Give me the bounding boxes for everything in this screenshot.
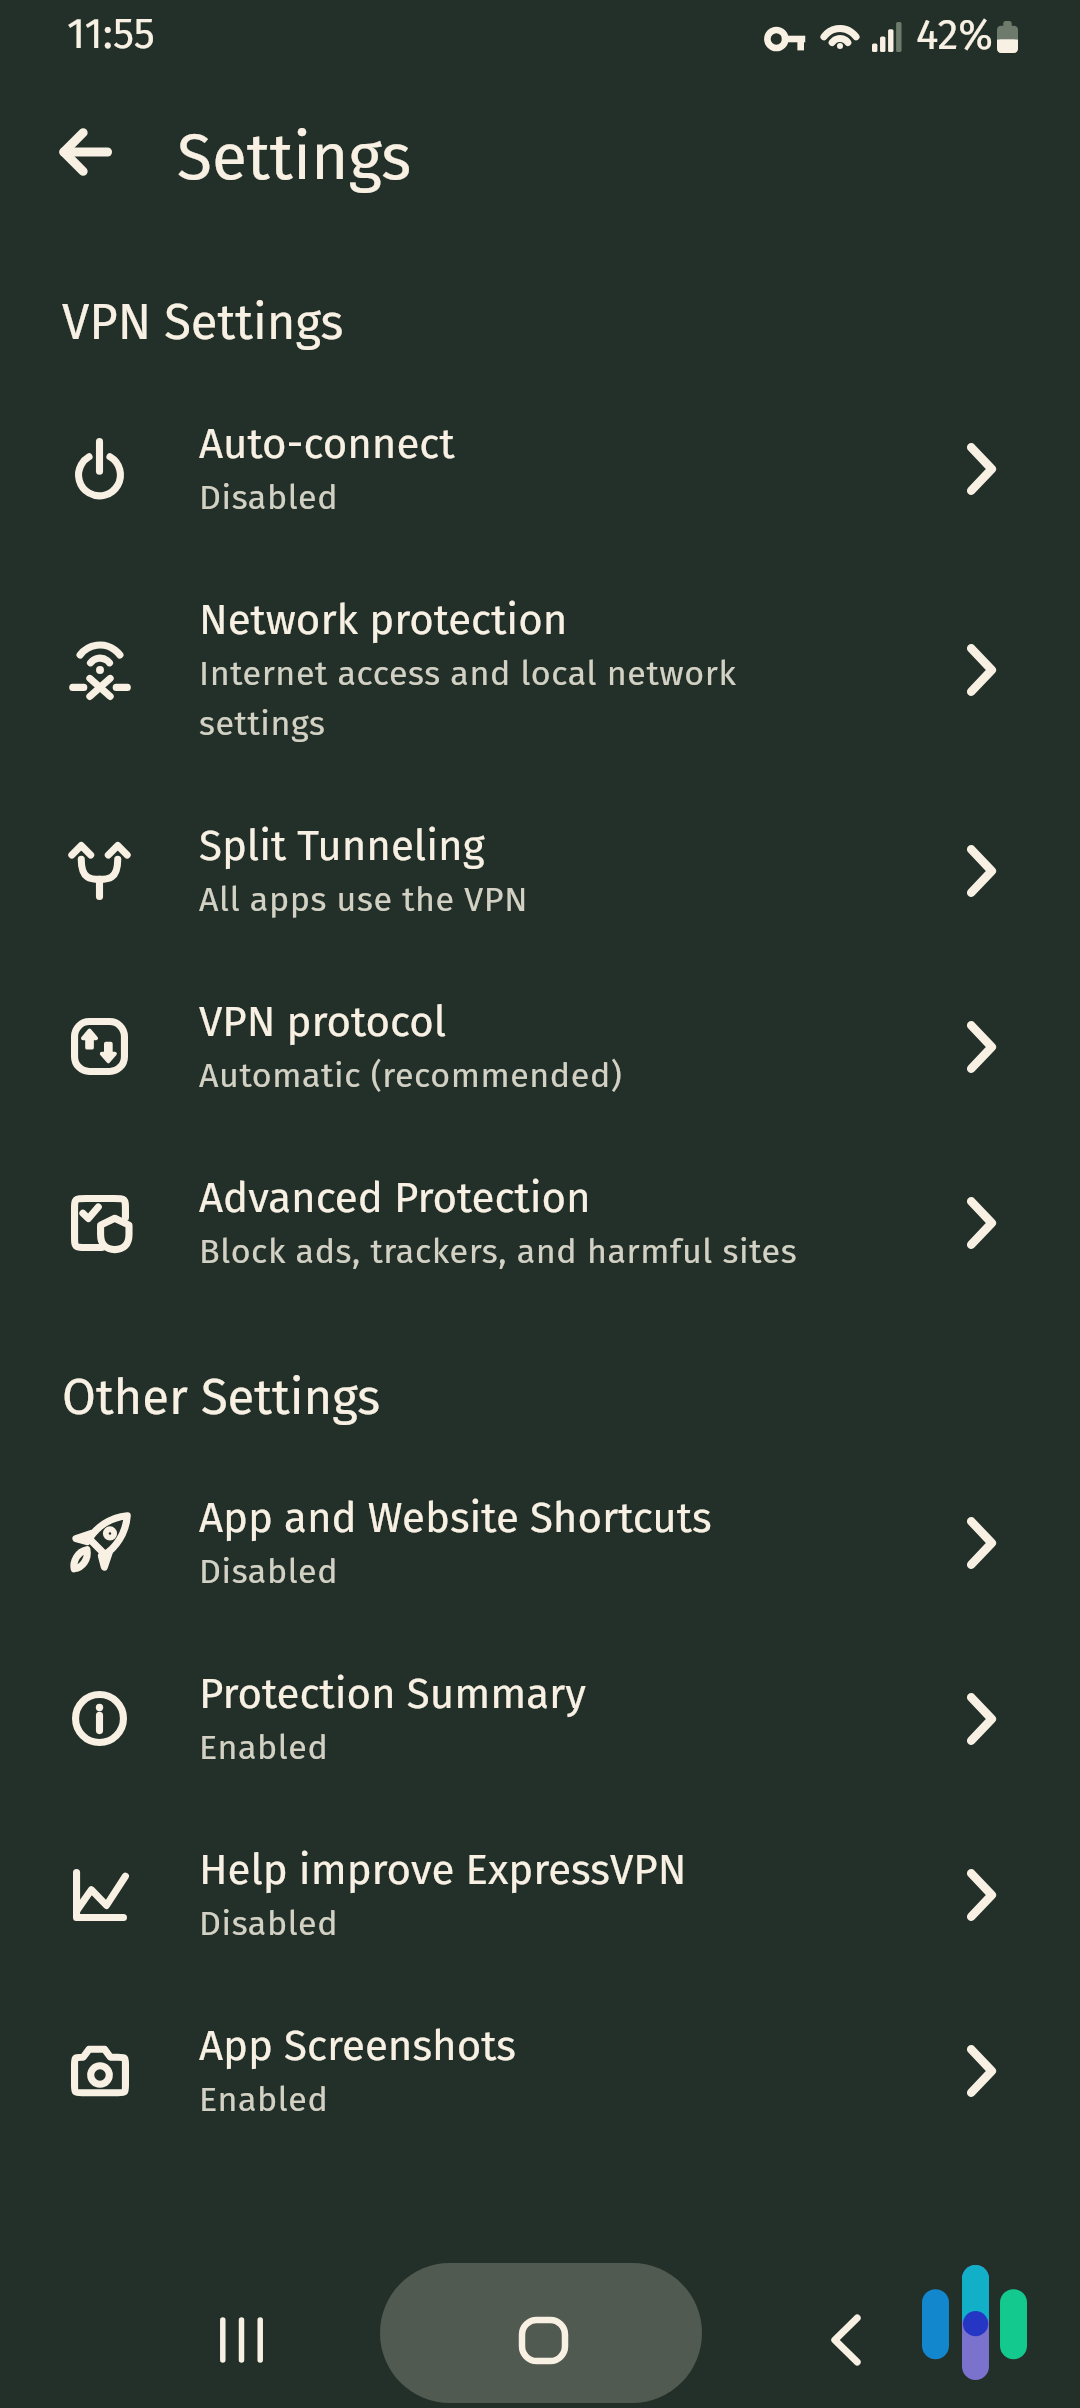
staticText: VPN protocol [199,997,447,1047]
staticText: VPN Settings [62,293,344,352]
staticText: Settings [177,119,412,196]
button[interactable]: Split Tunneling [0,821,1080,920]
staticText: Disabled [199,1903,824,1944]
button[interactable]: Back [33,100,137,204]
staticText: Split Tunneling [199,821,485,871]
button[interactable]: VPN protocol [0,997,1080,1096]
staticText: Block ads, trackers, and harmful sites [199,1231,824,1272]
staticText: Auto-connect [199,419,455,469]
staticText: Network protection [199,595,568,645]
staticText: 11:55 [67,9,155,59]
button[interactable]: App and Website Shortcuts [0,1493,1080,1592]
button[interactable]: Network protection [0,595,1080,744]
staticText: App and Website Shortcuts [199,1493,712,1543]
staticText: Automatic (recommended) [199,1055,824,1096]
staticText: 42% [916,10,993,60]
staticText: App Screenshots [199,2021,516,2071]
button[interactable]: Auto-connect [0,419,1080,518]
button[interactable]: App Screenshots [0,2021,1080,2120]
staticText: Advanced Protection [199,1173,591,1223]
staticText: Enabled [199,2079,824,2120]
staticText: Disabled [199,1551,824,1592]
staticText: Disabled [199,477,824,518]
staticText: All apps use the VPN [199,879,824,920]
button[interactable]: Protection Summary [0,1669,1080,1768]
staticText: Protection Summary [199,1669,586,1719]
staticText: Internet access and local network settin… [199,653,824,744]
staticText: Help improve ExpressVPN [199,1845,687,1895]
button[interactable]: Advanced Protection [0,1173,1080,1272]
button[interactable]: Back [801,2295,891,2385]
staticText: Other Settings [62,1368,381,1427]
staticText: Enabled [199,1727,824,1768]
button[interactable]: Home [380,2263,702,2403]
button[interactable]: Assistant [912,2255,1037,2390]
button[interactable]: Recent apps [196,2295,286,2385]
button[interactable]: Help improve ExpressVPN [0,1845,1080,1944]
